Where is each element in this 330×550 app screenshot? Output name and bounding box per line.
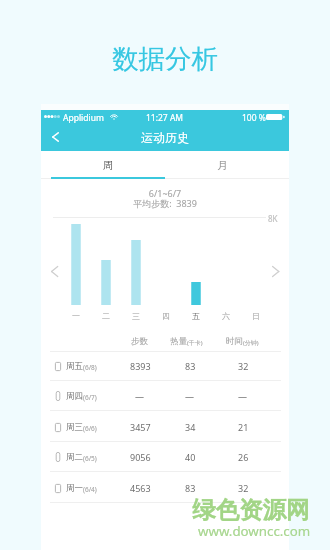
staticText: 五: [192, 311, 200, 321]
staticText: 8393: [130, 360, 151, 372]
staticText: 周: [103, 159, 114, 172]
staticText: (6/5): [83, 454, 97, 463]
staticText: 83: [185, 360, 196, 372]
staticText: 三: [132, 311, 140, 321]
staticText: 周三: [66, 422, 83, 433]
staticText: 3457: [130, 421, 151, 433]
staticText: Applidium: [63, 112, 104, 124]
button[interactable]: Back: [42, 124, 68, 150]
staticText: 运动历史: [141, 130, 189, 144]
staticText: 日: [252, 311, 260, 321]
staticText: 32: [238, 360, 249, 372]
staticText: 34: [185, 421, 196, 433]
staticText: 21: [238, 421, 249, 433]
button[interactable]: 周四: [41, 381, 289, 411]
staticText: 4563: [130, 482, 151, 494]
staticText: —: [185, 390, 195, 402]
staticText: 步数: [131, 336, 148, 347]
button[interactable]: 周五: [41, 351, 289, 381]
staticText: (分钟): [243, 339, 259, 347]
staticText: (千卡): [187, 339, 203, 347]
staticText: 平均步数: 3839: [41, 197, 289, 209]
staticText: (6/7): [83, 393, 97, 402]
staticText: 一: [72, 311, 80, 321]
staticText: 二: [102, 311, 110, 321]
button[interactable]: 月: [165, 151, 289, 178]
staticText: 6/1~6/7: [41, 187, 289, 199]
staticText: 83: [185, 482, 196, 494]
button[interactable]: 周: [41, 151, 165, 178]
staticText: 数据分析: [112, 42, 218, 74]
staticText: 周五: [66, 361, 83, 372]
staticText: (6/4): [83, 485, 97, 494]
staticText: 月: [217, 159, 228, 172]
staticText: 11:27 AM: [146, 112, 184, 124]
button[interactable]: 周三: [41, 412, 289, 442]
staticText: 周二: [66, 452, 83, 463]
staticText: 40: [185, 451, 196, 463]
staticText: 100 %: [242, 112, 266, 124]
staticText: —: [135, 390, 145, 402]
staticText: 32: [238, 482, 249, 494]
staticText: 六: [222, 311, 230, 321]
staticText: 四: [162, 311, 170, 321]
button[interactable]: 周一: [41, 473, 289, 503]
staticText: 8K: [268, 213, 278, 224]
staticText: (6/6): [83, 424, 97, 433]
staticText: —: [238, 390, 248, 402]
button[interactable]: 周二: [41, 442, 289, 472]
staticText: (6/8): [83, 363, 97, 372]
staticText: 周一: [66, 483, 83, 494]
staticText: 9056: [130, 451, 151, 463]
staticText: 热量: [170, 336, 187, 347]
staticText: 时间: [226, 336, 243, 347]
staticText: www.downcc.com: [198, 522, 311, 540]
staticText: 绿色资源网: [192, 495, 310, 525]
staticText: 周四: [66, 391, 83, 402]
staticText: 26: [238, 451, 249, 463]
